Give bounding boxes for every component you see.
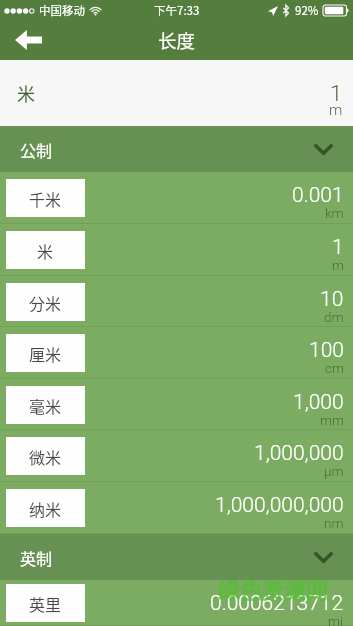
staticText: 10 [320, 287, 344, 312]
button[interactable]: 英里 [0, 580, 353, 626]
button[interactable]: 米 [0, 60, 353, 126]
button[interactable]: Back [0, 20, 56, 60]
staticText: dm [324, 309, 344, 325]
staticText: 千米 [29, 187, 62, 210]
staticText: 1 [332, 235, 344, 260]
staticText: mi [328, 613, 344, 626]
staticText: 分米 [29, 291, 62, 314]
button[interactable]: 千米 [0, 172, 353, 224]
button[interactable]: 米 [0, 224, 353, 276]
staticText: 0.0006213712 [210, 591, 344, 616]
staticText: 绿色资源网 [218, 572, 329, 604]
staticText: 100 [309, 338, 344, 363]
staticText: cm [325, 360, 344, 376]
staticText: m [329, 101, 343, 119]
staticText: km [325, 205, 344, 221]
button[interactable]: 厘米 [0, 327, 353, 379]
staticText: 微米 [29, 445, 62, 468]
staticText: nm [324, 515, 344, 531]
staticText: 0.001 [292, 183, 344, 208]
staticText: 米 [17, 80, 35, 106]
staticText: 厘米 [29, 342, 62, 365]
button[interactable]: 纳米 [0, 482, 353, 534]
staticText: 1 [330, 81, 343, 107]
staticText: 公制 [20, 138, 53, 161]
button[interactable]: 分米 [0, 276, 353, 327]
staticText: 英里 [29, 592, 62, 615]
button[interactable]: 微米 [0, 430, 353, 482]
button[interactable]: 英制 [0, 534, 353, 580]
staticText: 1,000 [293, 390, 344, 415]
staticText: 纳米 [29, 497, 62, 520]
staticText: mm [320, 412, 344, 428]
button[interactable]: 毫米 [0, 379, 353, 430]
staticText: 92% [295, 2, 319, 19]
staticText: μm [324, 463, 344, 479]
staticText: 英制 [20, 546, 53, 569]
button[interactable]: 公制 [0, 126, 353, 172]
staticText: 米 [37, 239, 54, 262]
staticText: 1,000,000,000 [215, 493, 344, 518]
staticText: 下午7:33 [154, 2, 200, 19]
staticText: 长度 [158, 27, 196, 54]
staticText: m [332, 257, 344, 273]
staticText: 中国移动 [39, 2, 85, 19]
staticText: 1,000,000 [254, 441, 344, 466]
staticText: 毫米 [29, 394, 62, 417]
